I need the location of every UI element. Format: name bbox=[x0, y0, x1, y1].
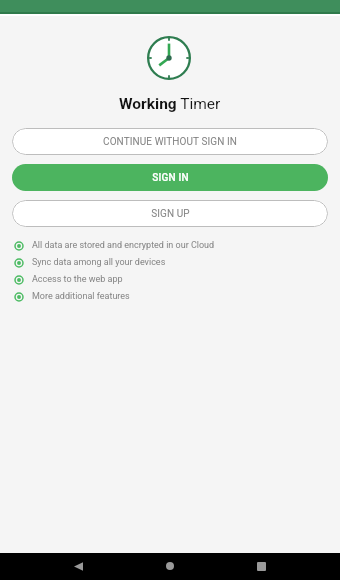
staticText: Working Timer bbox=[119, 95, 221, 113]
staticText: All data are stored and encrypted in our… bbox=[32, 240, 215, 251]
button[interactable]: Back bbox=[65, 553, 91, 579]
button[interactable]: SIGN IN bbox=[12, 164, 328, 191]
staticText: More additional features bbox=[32, 291, 130, 302]
button[interactable]: Recent apps bbox=[248, 553, 274, 579]
staticText: SIGN IN bbox=[152, 172, 189, 184]
button[interactable]: Home bbox=[157, 553, 183, 579]
button[interactable]: SIGN UP bbox=[12, 200, 328, 227]
staticText: Access to the web app bbox=[32, 274, 123, 285]
button[interactable]: CONTINUE WITHOUT SIGN IN bbox=[12, 128, 328, 155]
staticText: SIGN UP bbox=[151, 208, 190, 220]
staticText: Sync data among all your devices bbox=[32, 257, 166, 268]
staticText: CONTINUE WITHOUT SIGN IN bbox=[103, 136, 237, 148]
